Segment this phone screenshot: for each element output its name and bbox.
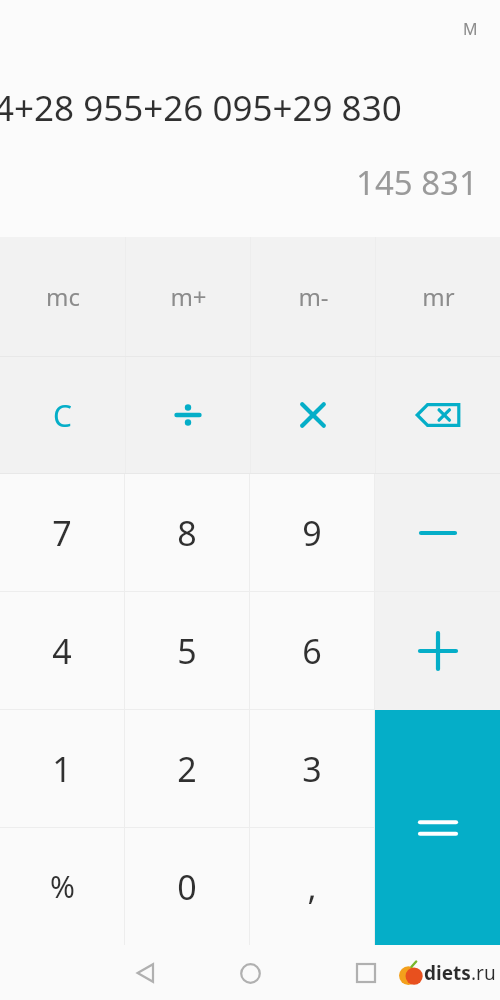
staticText: diets	[424, 960, 471, 986]
button[interactable]: Home	[228, 951, 272, 995]
button[interactable]: 1	[0, 710, 124, 827]
staticText: mc	[46, 280, 80, 313]
button[interactable]: Divide	[126, 357, 250, 473]
button[interactable]: 7	[0, 474, 124, 591]
staticText: 4	[52, 628, 72, 674]
button[interactable]: 2	[125, 710, 249, 827]
staticText: 0	[177, 864, 197, 910]
button[interactable]: 6	[250, 592, 374, 709]
button[interactable]: C	[0, 357, 125, 473]
staticText: 7	[52, 510, 72, 556]
button[interactable]: Minus	[375, 474, 500, 591]
staticText: 8	[177, 510, 197, 556]
staticText: 4+28 955+26 095+29 830	[0, 84, 402, 132]
button[interactable]: 5	[125, 592, 249, 709]
staticText: 6	[302, 628, 322, 674]
button[interactable]: Backspace	[376, 357, 500, 473]
button[interactable]: m-	[251, 237, 375, 356]
staticText: 9	[302, 510, 322, 556]
staticText: mr	[422, 280, 455, 313]
staticText: 3	[302, 746, 322, 792]
staticText: C	[53, 395, 72, 436]
staticText: M	[463, 18, 478, 40]
staticText: %	[50, 866, 75, 907]
button[interactable]: Equals	[375, 710, 500, 945]
staticText: 5	[177, 628, 197, 674]
button[interactable]: %	[0, 828, 124, 945]
button[interactable]: Back	[124, 951, 168, 995]
staticText: m+	[170, 280, 207, 313]
staticText: 145 831	[356, 160, 478, 205]
button[interactable]: Recents	[344, 951, 388, 995]
button[interactable]: mr	[376, 237, 500, 356]
staticText: .ru	[471, 960, 496, 986]
staticText: ,	[307, 864, 317, 910]
button[interactable]: Multiply	[251, 357, 375, 473]
button[interactable]: m+	[126, 237, 250, 356]
button[interactable]: 4	[0, 592, 124, 709]
button[interactable]: Plus	[375, 592, 500, 710]
button[interactable]: 8	[125, 474, 249, 591]
staticText: m-	[298, 280, 329, 313]
button[interactable]: 9	[250, 474, 374, 591]
button[interactable]: 3	[250, 710, 374, 827]
staticText: 1	[52, 746, 72, 792]
button[interactable]: mc	[0, 237, 125, 356]
button[interactable]: 0	[125, 828, 249, 945]
button[interactable]: ,	[250, 828, 374, 945]
staticText: 2	[177, 746, 197, 792]
